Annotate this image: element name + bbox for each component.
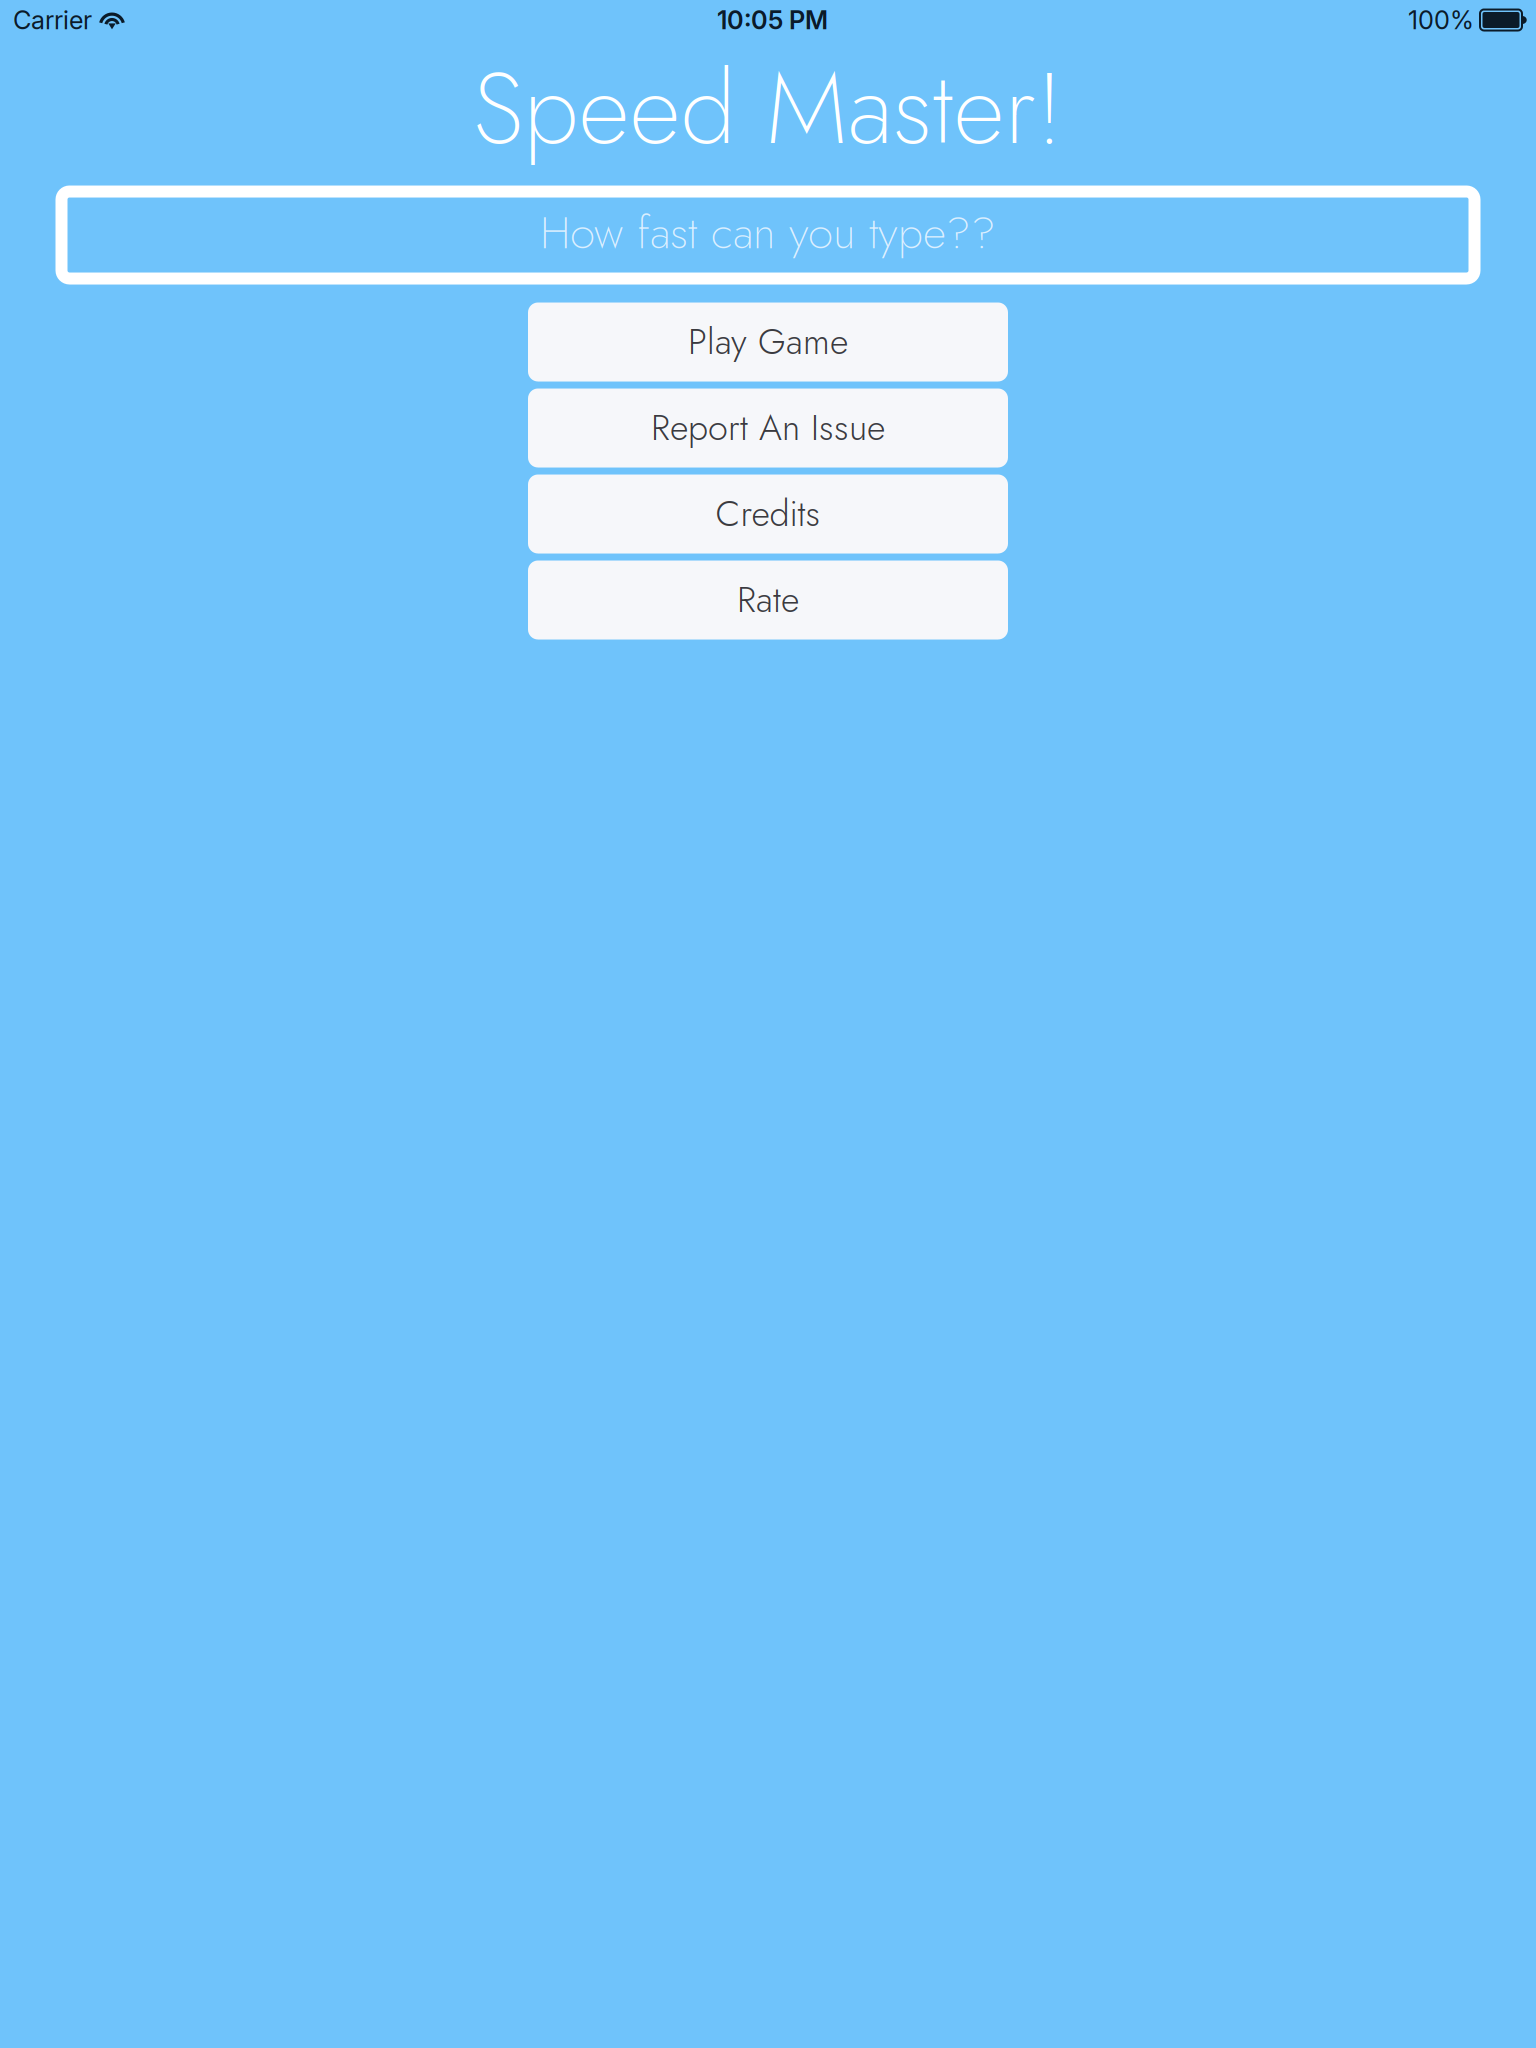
staticText: Play Game [688,315,848,367]
staticText: Carrier [13,5,92,35]
button[interactable]: Rate [528,560,1008,639]
staticText: Speed Master! [472,36,1063,180]
button[interactable]: Report An Issue [528,388,1008,467]
staticText: How fast can you type?? [540,200,996,265]
staticText: Credits [715,487,820,539]
staticText: 10:05 PM [717,5,828,35]
button[interactable]: Play Game [528,302,1008,381]
staticText: Report An Issue [651,401,885,453]
button[interactable]: How fast can you type?? [61,191,1474,278]
staticText: Rate [737,573,799,625]
button[interactable]: Credits [528,474,1008,553]
staticText: 100% [1408,5,1474,35]
